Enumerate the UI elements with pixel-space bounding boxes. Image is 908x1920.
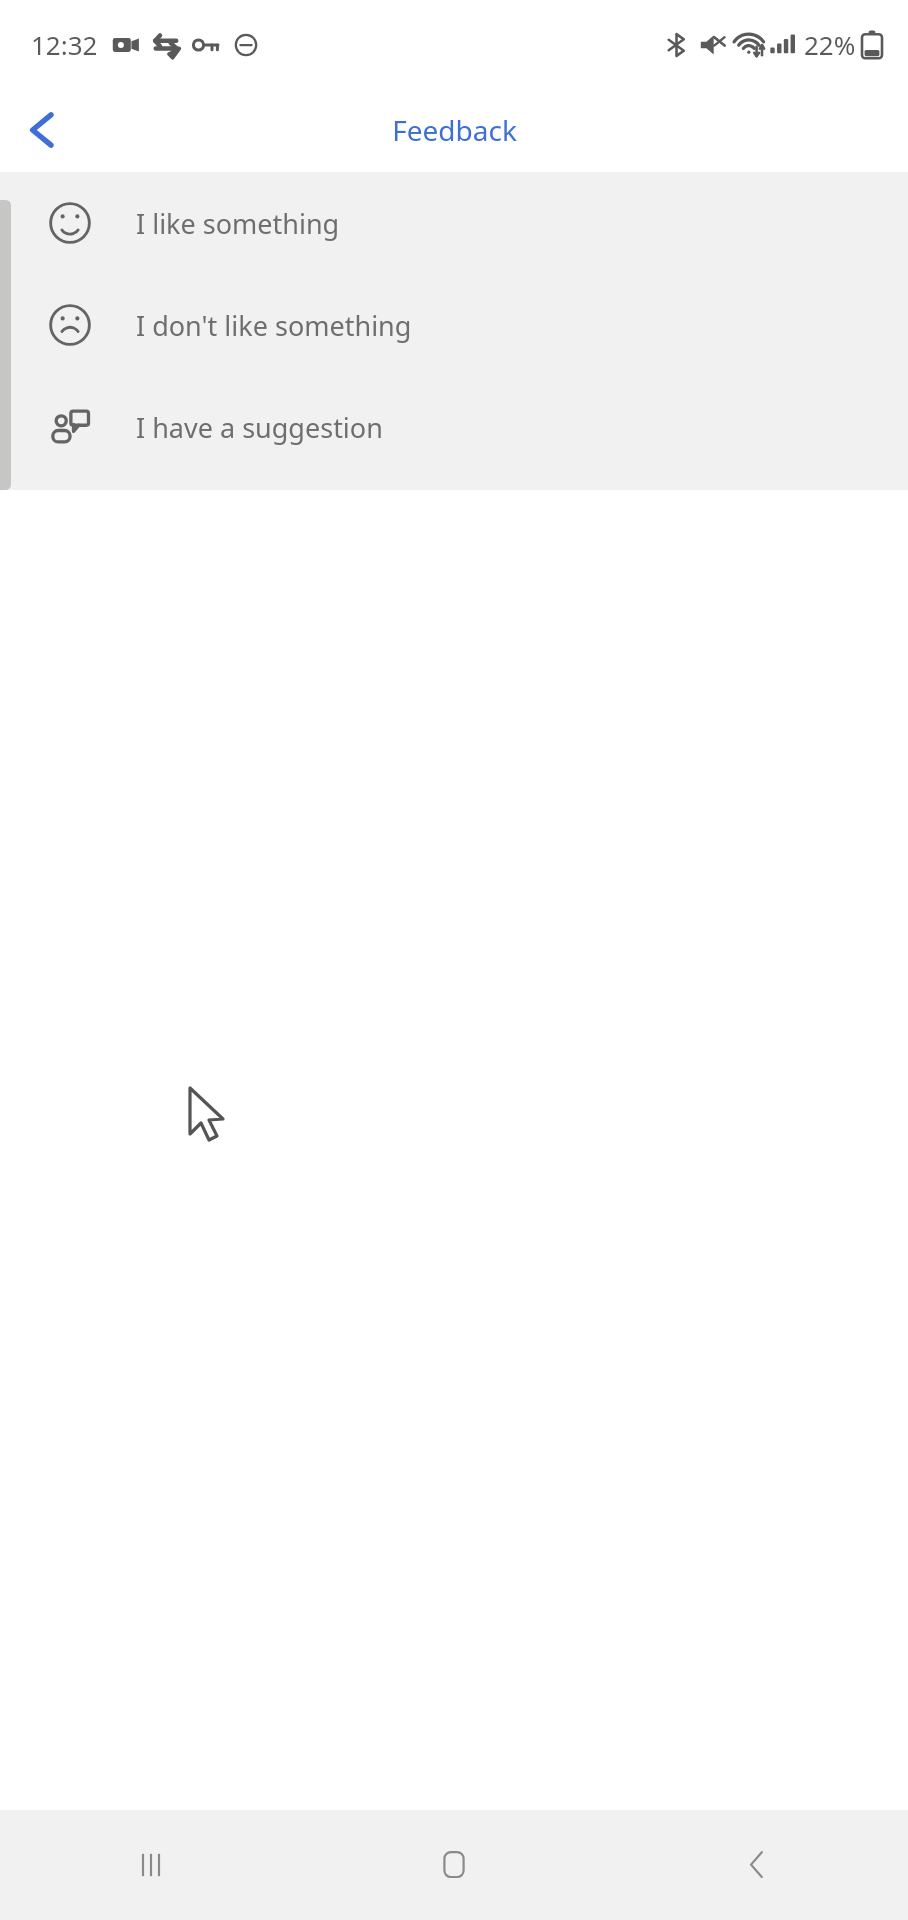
staticText: Feedback <box>392 111 517 149</box>
button[interactable]: Back <box>0 88 86 172</box>
staticText: I don't like something <box>136 307 412 344</box>
button[interactable]: Home <box>302 1810 605 1920</box>
staticText: 22% <box>804 27 856 62</box>
staticText: I have a suggestion <box>136 409 383 446</box>
button[interactable]: Back <box>605 1810 908 1920</box>
button[interactable]: I like something <box>0 172 908 274</box>
staticText: 12:32 <box>31 27 98 62</box>
button[interactable]: Recent apps <box>0 1810 302 1920</box>
button[interactable]: I don't like something <box>0 274 908 376</box>
staticText: I like something <box>136 205 340 242</box>
button[interactable]: I have a suggestion <box>0 376 908 478</box>
